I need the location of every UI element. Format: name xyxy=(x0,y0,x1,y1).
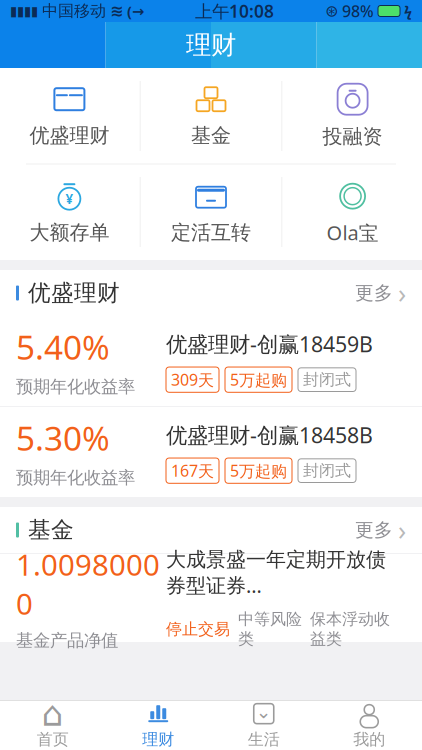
staticText: 优盛理财 xyxy=(29,123,109,148)
staticText: 更多 xyxy=(355,281,393,304)
staticText: › xyxy=(398,275,406,311)
staticText: 我的 xyxy=(353,730,385,749)
staticText: 停止交易 xyxy=(166,619,230,639)
button[interactable]: 理财 xyxy=(105,701,211,750)
staticText: 预期年化收益率 xyxy=(16,467,135,488)
staticText: 309天 xyxy=(171,369,214,390)
button[interactable]: 优盛理财 xyxy=(0,68,140,163)
button[interactable]: 更多 xyxy=(355,275,406,311)
staticText: 5万起购 xyxy=(230,460,287,481)
staticText: 基金 xyxy=(191,123,231,148)
staticText: 优盛理财-创赢18459B xyxy=(166,330,373,358)
staticText: 基金产品净值 xyxy=(16,630,118,651)
staticText: 更多 xyxy=(355,518,393,541)
button[interactable]: 基金 xyxy=(141,68,281,163)
staticText: ⊛ xyxy=(325,2,338,20)
staticText: 预期年化收益率 xyxy=(16,376,135,397)
staticText: 投融资 xyxy=(323,124,383,149)
staticText: 封闭式 xyxy=(303,461,351,480)
button[interactable]: 投融资 xyxy=(282,68,422,163)
staticText: ϟ xyxy=(404,1,412,21)
staticText: 理财 xyxy=(142,730,174,749)
button[interactable]: 1.00980000 xyxy=(0,554,422,642)
staticText: ¥ xyxy=(65,190,73,208)
staticText: Ola宝 xyxy=(327,219,379,246)
staticText: 基金 xyxy=(28,516,74,544)
staticText: (→ xyxy=(127,1,144,21)
staticText: 5.40% xyxy=(16,325,110,369)
staticText: ⌄ xyxy=(256,701,272,722)
button[interactable]: 5.40% xyxy=(0,316,422,406)
staticText: 优盛理财-创赢18458B xyxy=(166,421,373,449)
staticText: 首页 xyxy=(37,730,69,749)
button[interactable]: 定活互转 xyxy=(141,164,281,259)
staticText: ▮▮▮▮ xyxy=(10,3,38,18)
staticText: 大额存单 xyxy=(29,220,109,245)
staticText: 5.30% xyxy=(16,416,110,460)
button[interactable]: 更多 xyxy=(355,512,406,548)
staticText: 上午10:08 xyxy=(195,0,274,22)
staticText: ⌂ xyxy=(42,694,64,733)
staticText: 1.00980000 xyxy=(16,545,160,623)
button[interactable]: 我的 xyxy=(316,701,422,750)
button[interactable]: Ola宝 xyxy=(282,164,422,259)
staticText: 大成景盛一年定期开放债券型证券… xyxy=(166,547,386,598)
staticText: 定活互转 xyxy=(171,220,251,245)
staticText: 中国移动 xyxy=(42,1,106,21)
staticText: 中等风险类 xyxy=(238,609,302,649)
staticText: 167天 xyxy=(171,460,214,481)
staticText: 优盛理财 xyxy=(28,279,120,307)
button[interactable]: 5.30% xyxy=(0,407,422,497)
staticText: 98% xyxy=(342,0,374,22)
staticText: › xyxy=(398,512,406,548)
staticText: ≋ xyxy=(110,2,123,20)
staticText: 5万起购 xyxy=(230,369,287,390)
staticText: 保本浮动收益类 xyxy=(310,609,390,649)
button[interactable]: ¥ xyxy=(0,164,140,259)
button[interactable]: ⌄ xyxy=(211,701,316,750)
button[interactable]: ⌂ xyxy=(0,701,105,750)
staticText: 封闭式 xyxy=(303,370,351,389)
staticText: 理财 xyxy=(186,29,236,60)
staticText: 生活 xyxy=(248,730,280,749)
